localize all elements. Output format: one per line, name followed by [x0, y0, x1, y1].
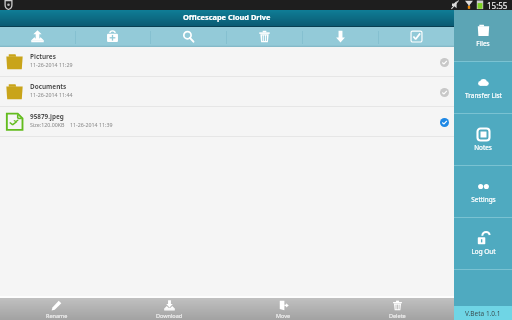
staticText: Notes — [474, 143, 492, 152]
staticText: Size:120.00KB 11-26-2014 11:39 — [30, 121, 113, 128]
button[interactable]: Select Documents — [434, 82, 454, 102]
staticText: Files — [476, 39, 490, 48]
button[interactable]: Rename — [0, 298, 113, 320]
button[interactable]: Pictures — [0, 47, 454, 76]
staticText: Pictures — [30, 52, 56, 61]
staticText: Download — [156, 312, 183, 319]
staticText: Log Out — [471, 247, 496, 256]
staticText: 15:55 — [487, 0, 508, 10]
staticText: 11-26-2014 11:44 — [30, 91, 73, 98]
button[interactable]: Notes — [454, 114, 512, 165]
staticText: V.Beta 1.0.1 — [465, 309, 501, 318]
button[interactable]: New folder — [75, 27, 150, 47]
staticText: 11-26-2014 11:29 — [30, 61, 73, 68]
button[interactable]: Download — [302, 27, 378, 47]
staticText: Move — [276, 312, 291, 319]
staticText: Officescape Cloud Drive — [183, 12, 271, 22]
button[interactable]: Download — [113, 298, 226, 320]
button[interactable]: Delete — [226, 27, 302, 47]
staticText: Settings — [471, 195, 496, 204]
staticText: Transfer List — [465, 91, 502, 100]
button[interactable]: Move — [226, 298, 340, 320]
button[interactable]: Search — [150, 27, 226, 47]
button[interactable]: Select Pictures — [434, 52, 454, 72]
button[interactable]: Files — [454, 10, 512, 61]
button[interactable]: Log Out — [454, 218, 512, 269]
button[interactable]: Documents — [0, 77, 454, 106]
button[interactable]: 95879.jpeg — [0, 107, 454, 136]
button[interactable]: Transfer List — [454, 62, 512, 113]
button[interactable]: Settings — [454, 166, 512, 217]
staticText: Documents — [30, 82, 67, 91]
staticText: Rename — [46, 312, 68, 319]
button[interactable]: Select 95879.jpeg — [434, 112, 454, 132]
button[interactable]: Delete — [340, 298, 454, 320]
button[interactable]: Select all — [378, 27, 454, 47]
button[interactable]: Upload — [0, 27, 75, 47]
staticText: Delete — [389, 312, 406, 319]
staticText: 95879.jpeg — [30, 112, 64, 121]
